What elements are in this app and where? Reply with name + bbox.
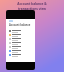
button[interactable]: [8, 49, 33, 53]
button[interactable]: [8, 45, 33, 49]
button[interactable]: [8, 33, 33, 37]
button[interactable]: [9, 20, 13, 22]
staticText: transactions view: [4, 7, 60, 11]
staticText: Account balance &: [4, 2, 60, 6]
button[interactable]: [8, 29, 33, 33]
button[interactable]: [8, 41, 33, 45]
button[interactable]: [8, 37, 33, 41]
staticText: Account balance: [9, 23, 31, 27]
button[interactable]: [8, 53, 33, 57]
